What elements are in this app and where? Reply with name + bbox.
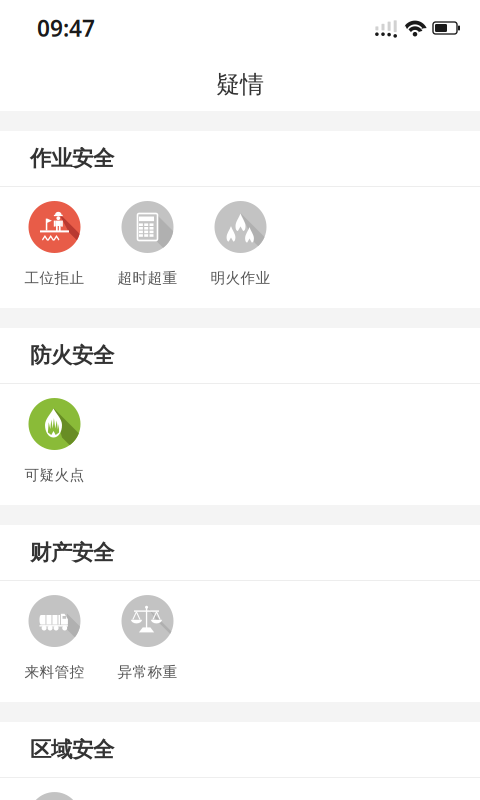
staticText: 财产安全 [30,539,114,566]
staticText: 防火安全 [30,342,114,369]
button[interactable]: 可疑火点 [8,396,101,486]
staticText: 工位拒止 [24,269,84,287]
button[interactable]: 异常称重 [101,593,194,683]
staticText: 区域安全 [30,736,114,763]
button[interactable]: 明火作业 [194,199,287,289]
staticText: 09:47 [37,13,95,43]
staticText: 明火作业 [210,269,270,287]
staticText: 超时超重 [117,269,177,287]
button[interactable]: 超时超重 [101,199,194,289]
button[interactable]: 工位拒止 [8,199,101,289]
staticText: 可疑火点 [24,466,84,484]
button[interactable]: 来料管控 [8,593,101,683]
button[interactable] [8,790,101,800]
staticText: 疑情 [216,70,264,99]
staticText: 作业安全 [30,145,114,172]
staticText: 异常称重 [117,663,177,681]
staticText: 来料管控 [24,663,84,681]
